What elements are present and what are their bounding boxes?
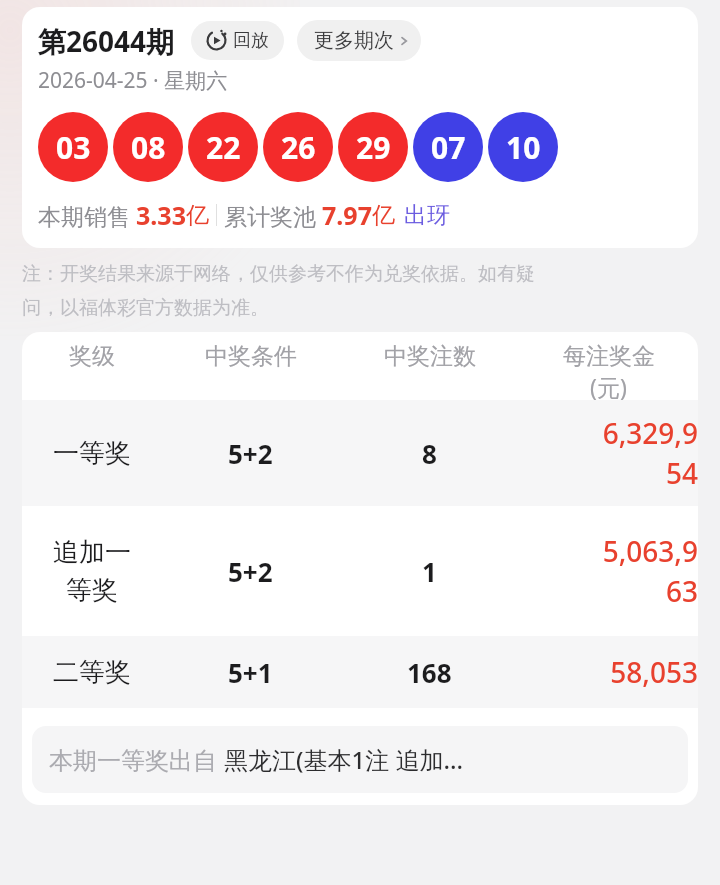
staticText: 168 <box>407 655 452 690</box>
staticText: 5,063,9 63 <box>602 532 698 611</box>
staticText: 5+2 <box>228 554 273 589</box>
other: 更多 <box>397 34 411 48</box>
staticText: 第26044期 <box>38 22 175 60</box>
staticText: 6,329,9 54 <box>602 414 698 493</box>
staticText: 黑龙江(基本1注 追加... <box>224 743 464 776</box>
other: 回放 <box>206 30 227 51</box>
staticText: 2026-04-25 · 星期六 <box>38 66 228 95</box>
staticText: 累计奖池 <box>224 200 322 231</box>
staticText: 亿 <box>186 201 209 230</box>
button[interactable]: 二等奖 <box>22 636 698 708</box>
staticText: 3.33 <box>136 198 186 232</box>
button[interactable]: 追加一 等奖 <box>22 506 698 636</box>
staticText: 7.97 <box>322 198 372 232</box>
staticText: 08 <box>131 127 166 168</box>
staticText: 本期销售 <box>38 200 136 231</box>
staticText: 更多期次 <box>314 28 394 53</box>
staticText: 奖级 <box>69 342 115 371</box>
staticText: 出玡 <box>404 201 450 230</box>
staticText: (元) <box>590 371 627 400</box>
staticText: 22 <box>206 127 241 168</box>
staticText: 一等奖 <box>53 437 131 470</box>
staticText: 8 <box>422 436 437 471</box>
staticText: 中奖条件 <box>205 342 297 371</box>
button[interactable]: 更多期次 <box>297 20 421 61</box>
staticText: 03 <box>56 127 91 168</box>
staticText: 亿 <box>372 201 395 230</box>
staticText: 58,053 <box>610 653 698 691</box>
staticText: 回放 <box>233 29 269 52</box>
staticText: 每注奖金 <box>563 342 655 371</box>
staticText: 07 <box>431 127 466 168</box>
staticText: 1 <box>422 554 437 589</box>
staticText: 26 <box>281 127 316 168</box>
staticText: 29 <box>356 127 391 168</box>
button[interactable]: 回放 <box>191 21 284 60</box>
button[interactable]: 本期一等奖出自 <box>32 726 688 793</box>
button[interactable]: 一等奖 <box>22 400 698 506</box>
staticText: 中奖注数 <box>384 342 476 371</box>
staticText: 注：开奖结果来源于网络，仅供参考不作为兑奖依据。如有疑 问，以福体彩官方数据为准… <box>22 262 535 319</box>
staticText: 二等奖 <box>53 656 131 689</box>
button[interactable]: 出玡 <box>404 201 450 230</box>
staticText: 5+2 <box>228 436 273 471</box>
staticText: 5+1 <box>228 655 273 690</box>
staticText: 10 <box>506 127 541 168</box>
staticText: 本期一等奖出自 <box>49 743 224 776</box>
staticText: 追加一 等奖 <box>53 536 131 607</box>
